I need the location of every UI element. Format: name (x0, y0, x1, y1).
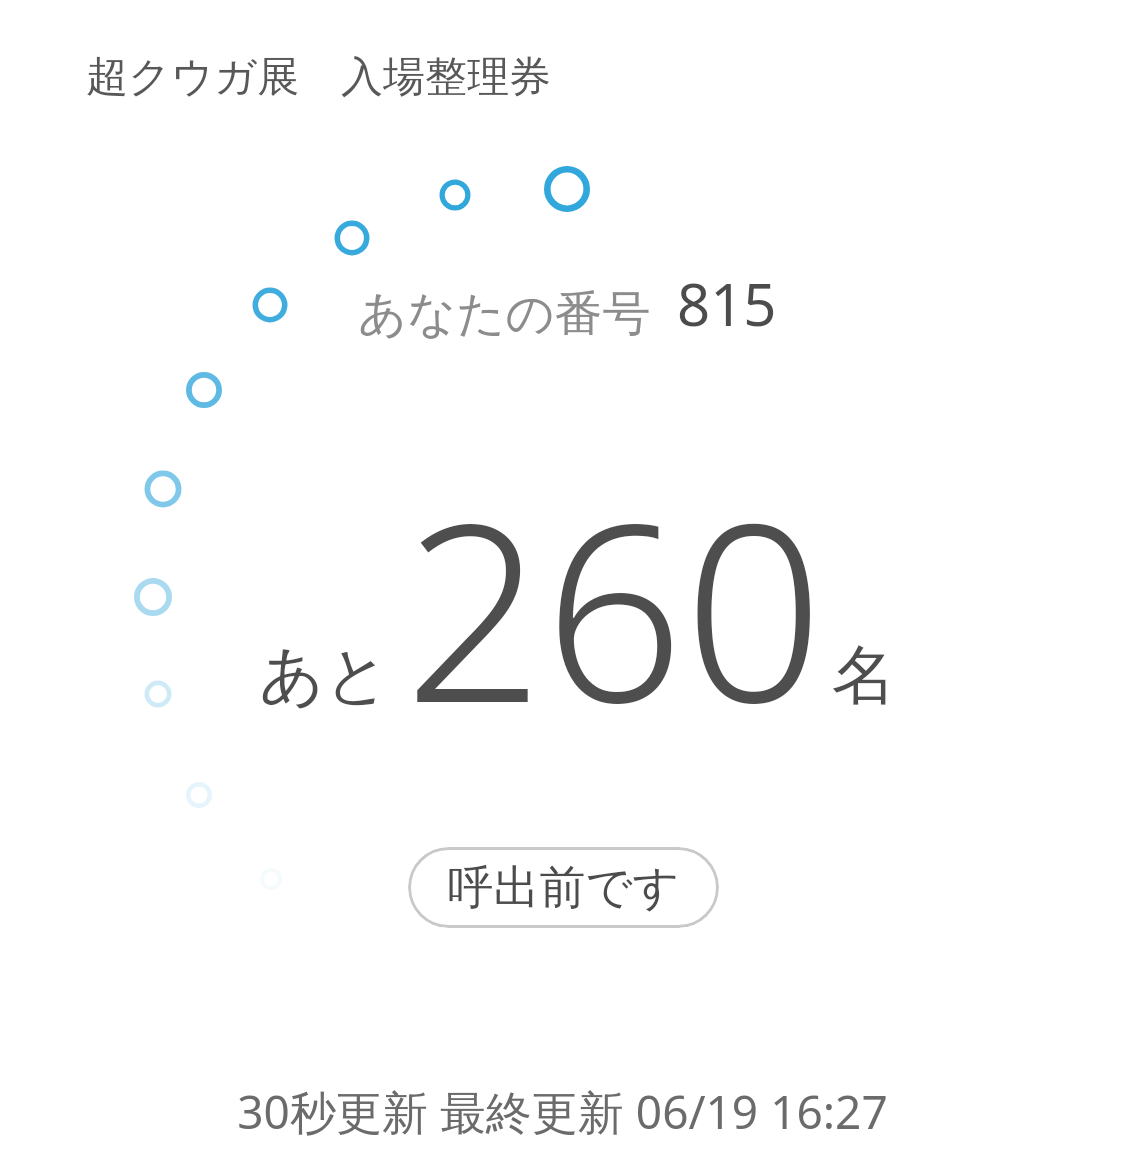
staticText: あと (259, 635, 390, 716)
staticText: 260 (404, 440, 824, 774)
staticText: 呼出前です (447, 859, 680, 917)
button[interactable]: 呼出前です (408, 847, 719, 928)
staticText: 超クウガ展 入場整理券 (86, 46, 551, 103)
staticText: 30秒更新 最終更新 06/19 16:27 (0, 1080, 1125, 1143)
other: 読み込み中 (0, 0, 1125, 1152)
staticText: 815 (677, 264, 777, 343)
staticText: あなたの番号 (358, 284, 651, 344)
staticText: 名 (832, 635, 896, 716)
